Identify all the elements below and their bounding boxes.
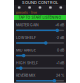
staticText: MID RANGE	[16, 48, 36, 52]
staticText: 0 dB	[57, 48, 64, 52]
staticText: 24 %	[56, 73, 64, 78]
staticText: -2 dB	[56, 36, 64, 40]
staticText: presets · live	[16, 11, 37, 14]
button[interactable]: Tool	[14, 5, 24, 10]
button[interactable]: Tool	[24, 5, 35, 10]
staticText: LOW SHELF	[16, 36, 36, 40]
staticText: +6 dB	[55, 23, 64, 27]
button[interactable]: TAP TO START LISTENING	[14, 15, 66, 20]
button[interactable]: Tool	[35, 5, 45, 10]
staticText: HIGH SHELF	[16, 61, 38, 65]
button[interactable]: Tool	[56, 5, 66, 10]
staticText: +1 dB	[56, 61, 64, 65]
staticText: MASTER GAIN	[16, 23, 39, 27]
staticText: SOUND CONTROL	[22, 0, 58, 5]
staticText: TAP TO START LISTENING	[18, 15, 61, 20]
staticText: REVERB MIX	[16, 73, 35, 78]
button[interactable]: Tool	[45, 5, 56, 10]
